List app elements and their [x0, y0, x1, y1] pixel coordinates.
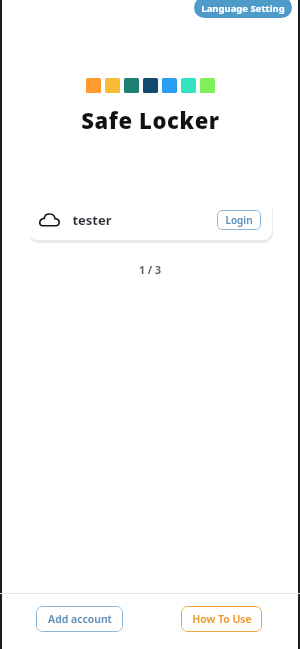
button[interactable]: Login	[217, 210, 261, 230]
staticText: Add account	[48, 612, 112, 626]
staticText: 1 / 3	[139, 263, 161, 277]
staticText: Safe Locker	[81, 105, 220, 135]
button[interactable]: tester	[28, 200, 272, 240]
staticText: Language Setting	[201, 2, 285, 15]
button[interactable]: Add account	[36, 606, 123, 632]
button[interactable]: Language Setting	[194, 0, 292, 18]
button[interactable]: How To Use	[181, 606, 262, 632]
staticText: How To Use	[192, 612, 252, 626]
staticText: tester	[72, 211, 112, 229]
staticText: Login	[225, 213, 253, 227]
